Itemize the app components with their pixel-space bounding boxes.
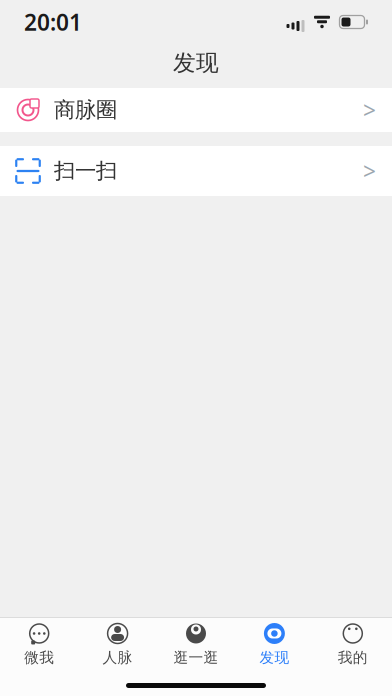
- button[interactable]: 商脉圈: [0, 88, 392, 132]
- staticText: 发现: [259, 648, 289, 666]
- staticText: >: [363, 156, 376, 186]
- staticText: 人脉: [103, 648, 133, 666]
- button[interactable]: 逛一逛: [157, 618, 235, 670]
- staticText: 20:01: [24, 7, 82, 37]
- staticText: 逛一逛: [173, 648, 218, 666]
- staticText: >: [363, 95, 376, 125]
- staticText: 商脉圈: [54, 97, 117, 123]
- button[interactable]: 扫一扫: [0, 146, 392, 196]
- button[interactable]: 发现: [235, 618, 314, 670]
- staticText: 微我: [24, 648, 54, 666]
- button[interactable]: 人脉: [78, 618, 157, 670]
- staticText: 发现: [173, 49, 219, 77]
- staticText: 我的: [338, 648, 368, 666]
- staticText: 扫一扫: [54, 158, 117, 184]
- button[interactable]: 微我: [0, 618, 78, 670]
- button[interactable]: 我的: [314, 618, 392, 670]
